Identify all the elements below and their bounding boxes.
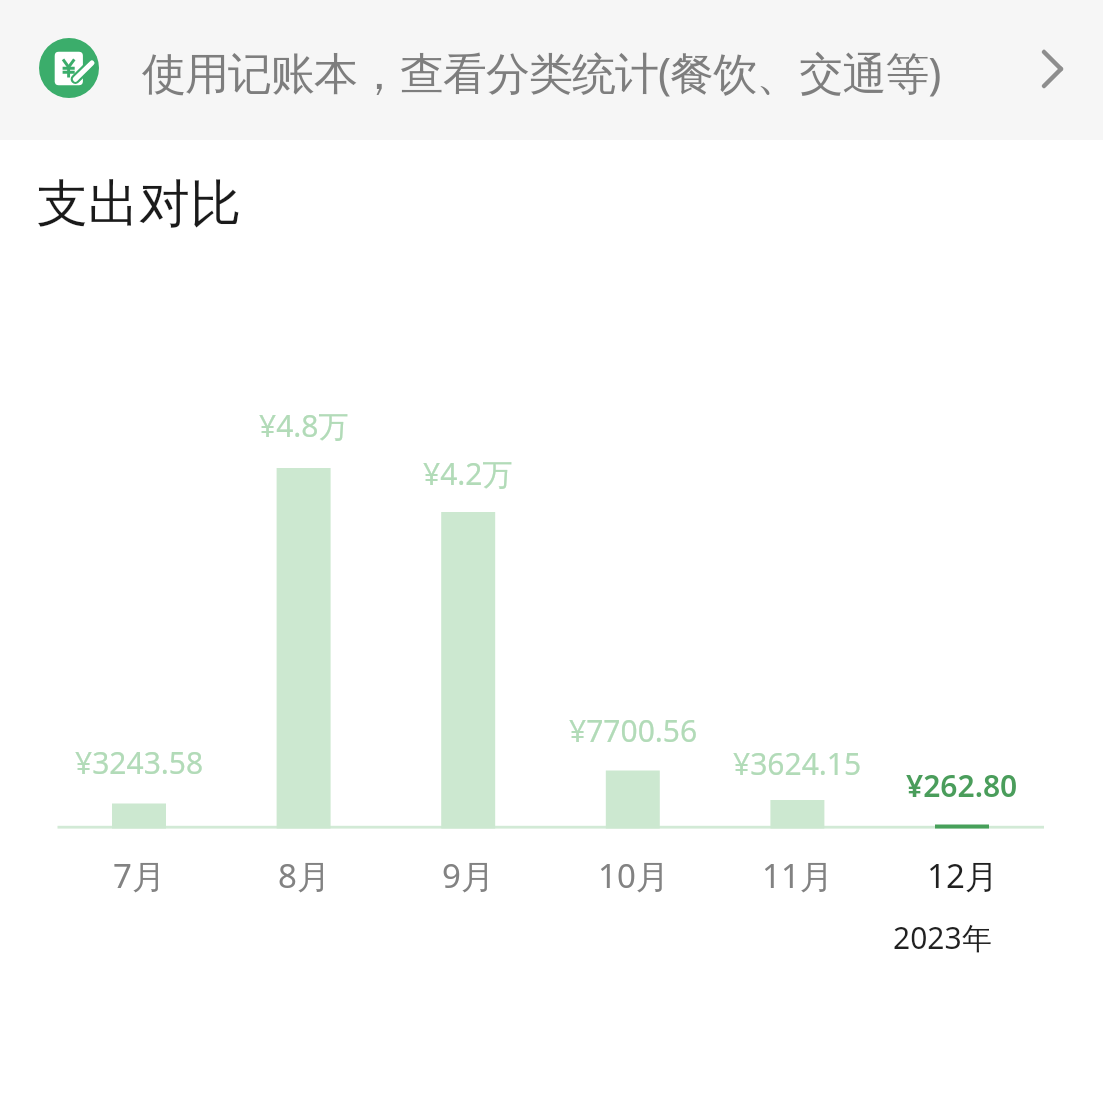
staticText: 9月: [442, 853, 494, 898]
staticText: 使用记账本，查看分类统计(餐饮、交通等): [142, 42, 941, 102]
staticText: ¥7700.56: [569, 710, 698, 751]
staticText: ¥3624.15: [733, 743, 862, 784]
staticText: 7月: [113, 853, 165, 898]
staticText: ¥4.8万: [259, 405, 349, 446]
staticText: 8月: [278, 853, 330, 898]
staticText: ¥262.80: [906, 765, 1018, 806]
staticText: ¥3243.58: [75, 742, 204, 783]
staticText: ¥4.2万: [423, 453, 513, 494]
staticText: 支出对比: [37, 172, 241, 236]
staticText: 2023年: [893, 917, 992, 958]
staticText: 12月: [927, 853, 998, 898]
button[interactable]: 使用记账本，查看分类统计(餐饮、交通等): [0, 0, 1103, 140]
staticText: 11月: [762, 853, 833, 898]
staticText: 10月: [598, 853, 669, 898]
